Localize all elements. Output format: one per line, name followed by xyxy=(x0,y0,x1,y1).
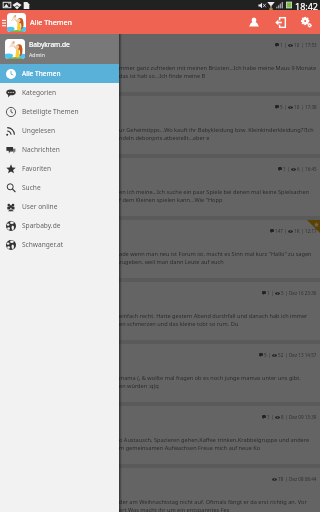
staticText: en ich meine…Ich suche ein paar Spiele b… xyxy=(119,188,310,196)
staticText: Dez 16 23:30 xyxy=(289,290,317,296)
staticText: 5 xyxy=(280,104,283,110)
staticText: | xyxy=(284,42,287,48)
staticText: 6 xyxy=(297,166,300,172)
staticText: mama (, & wollte mal fragen ob es noch j… xyxy=(119,374,301,382)
button[interactable]: Nachrichten xyxy=(0,140,119,159)
staticText: Sparbaby.de xyxy=(22,221,61,230)
staticText: 1 xyxy=(267,414,270,420)
staticText: 1 xyxy=(280,42,283,48)
staticText: 10 xyxy=(294,42,300,48)
staticText: der am Weihnachtstag nicht auf. Oftmals … xyxy=(119,498,307,506)
staticText: Nachrichten xyxy=(22,145,60,154)
staticText: Alle Themen xyxy=(30,17,72,27)
staticText: 147 xyxy=(275,228,283,234)
staticText: 52 xyxy=(278,352,284,358)
button[interactable]: Sparbaby.de xyxy=(0,216,119,235)
button[interactable]: 1 xyxy=(0,282,320,340)
staticText: | xyxy=(284,228,287,234)
button[interactable]: Ungelesen xyxy=(0,121,119,140)
staticText: | xyxy=(284,104,287,110)
staticText: | xyxy=(301,228,304,234)
button[interactable]: Logout xyxy=(267,10,293,34)
button[interactable]: 147 xyxy=(0,220,320,278)
button[interactable]: Alle Themen xyxy=(0,64,119,83)
staticText: en würden :q)q xyxy=(119,382,159,390)
staticText: mmer ganz zufrieden mit meinen Brüsten…I… xyxy=(119,64,317,72)
staticText: | xyxy=(301,42,304,48)
staticText: Dez 09 13:39 xyxy=(289,414,317,420)
button[interactable]: Kategorien xyxy=(0,83,119,102)
button[interactable]: 1 xyxy=(0,406,320,464)
staticText: Babykram.de xyxy=(29,40,70,49)
staticText: 78 xyxy=(278,476,284,482)
staticText: ur Geheimtipps…Wo kauft ihr Babykleidung… xyxy=(119,126,314,134)
staticText: Admin xyxy=(29,51,45,58)
staticText: | xyxy=(271,414,274,420)
button[interactable]: 5 xyxy=(0,96,320,154)
staticText: 5 xyxy=(264,352,267,358)
staticText: Alle Themen xyxy=(22,69,61,78)
staticText: 1 xyxy=(267,290,270,296)
button[interactable]: Beteiligte Themen xyxy=(0,102,119,121)
staticText: zugeben, weil man dann Leute auf euch xyxy=(119,258,224,266)
staticText: Schwanger.at xyxy=(22,240,64,249)
staticText: das ist halt so…Ich finde meine B xyxy=(119,72,206,80)
staticText: | xyxy=(285,476,288,482)
staticText: 1 xyxy=(283,166,286,172)
staticText: Kategorien xyxy=(22,88,57,97)
staticText: ndeln debonprix.atbestellt…aber e xyxy=(119,134,210,142)
staticText: 8 xyxy=(281,414,284,420)
staticText: f dem Kleinen spielen kann…Wie "Hopp xyxy=(119,196,223,204)
staticText: | xyxy=(271,290,274,296)
button[interactable]: Suche xyxy=(0,178,119,197)
staticText: Beteiligte Themen xyxy=(22,107,79,116)
button[interactable]: 1 xyxy=(0,34,320,92)
staticText: | xyxy=(285,414,288,420)
staticText: 17:38 xyxy=(305,104,317,110)
staticText: Dez 08 08:44 xyxy=(289,476,317,482)
staticText: Suche xyxy=(22,183,41,192)
staticText: 1K xyxy=(294,228,300,234)
staticText: en schmerzen und das kleine tobt so rum.… xyxy=(119,320,239,328)
button[interactable]: User online xyxy=(0,197,119,216)
staticText: 12:17 xyxy=(305,228,317,234)
button[interactable]: Open navigation drawer xyxy=(0,10,6,34)
staticText: ade wenn man neu ist Forum ist, macht es… xyxy=(119,250,312,258)
button[interactable]: Schwanger.at xyxy=(0,235,119,254)
staticText: | xyxy=(285,352,288,358)
staticText: einfach recht. Hatte gestern Abend durch… xyxy=(119,312,308,320)
button[interactable]: Babykram.de xyxy=(0,34,119,64)
button[interactable]: 5 xyxy=(0,344,320,402)
staticText: 17:53 xyxy=(305,42,317,48)
staticText: m gemeinsamen Aufwachsen Freue mich auf … xyxy=(119,444,261,452)
staticText: Ungelesen xyxy=(22,126,56,135)
staticText: ert Was macht ihr um ein entspanntes Fes xyxy=(119,506,230,512)
button[interactable]: 1 xyxy=(0,158,320,216)
staticText: Favoriten xyxy=(22,164,52,173)
staticText: | xyxy=(301,104,304,110)
button[interactable]: Settings xyxy=(293,10,319,34)
staticText: 18:42 xyxy=(295,0,319,10)
staticText: o Austausch, Spazieren gehen,Kaffee trin… xyxy=(119,436,310,444)
staticText: | xyxy=(287,166,290,172)
button[interactable]: Profile xyxy=(241,10,267,34)
staticText: User online xyxy=(22,202,58,211)
staticText: 16:45 xyxy=(305,166,317,172)
staticText: | xyxy=(285,290,288,296)
button[interactable]: Favoriten xyxy=(0,159,119,178)
staticText: Dez 13 14:57 xyxy=(289,352,317,358)
staticText: | xyxy=(268,352,271,358)
staticText: 5 xyxy=(281,290,284,296)
button[interactable]: 78 xyxy=(0,468,320,512)
staticText: 10 xyxy=(294,104,300,110)
staticText: | xyxy=(301,166,304,172)
